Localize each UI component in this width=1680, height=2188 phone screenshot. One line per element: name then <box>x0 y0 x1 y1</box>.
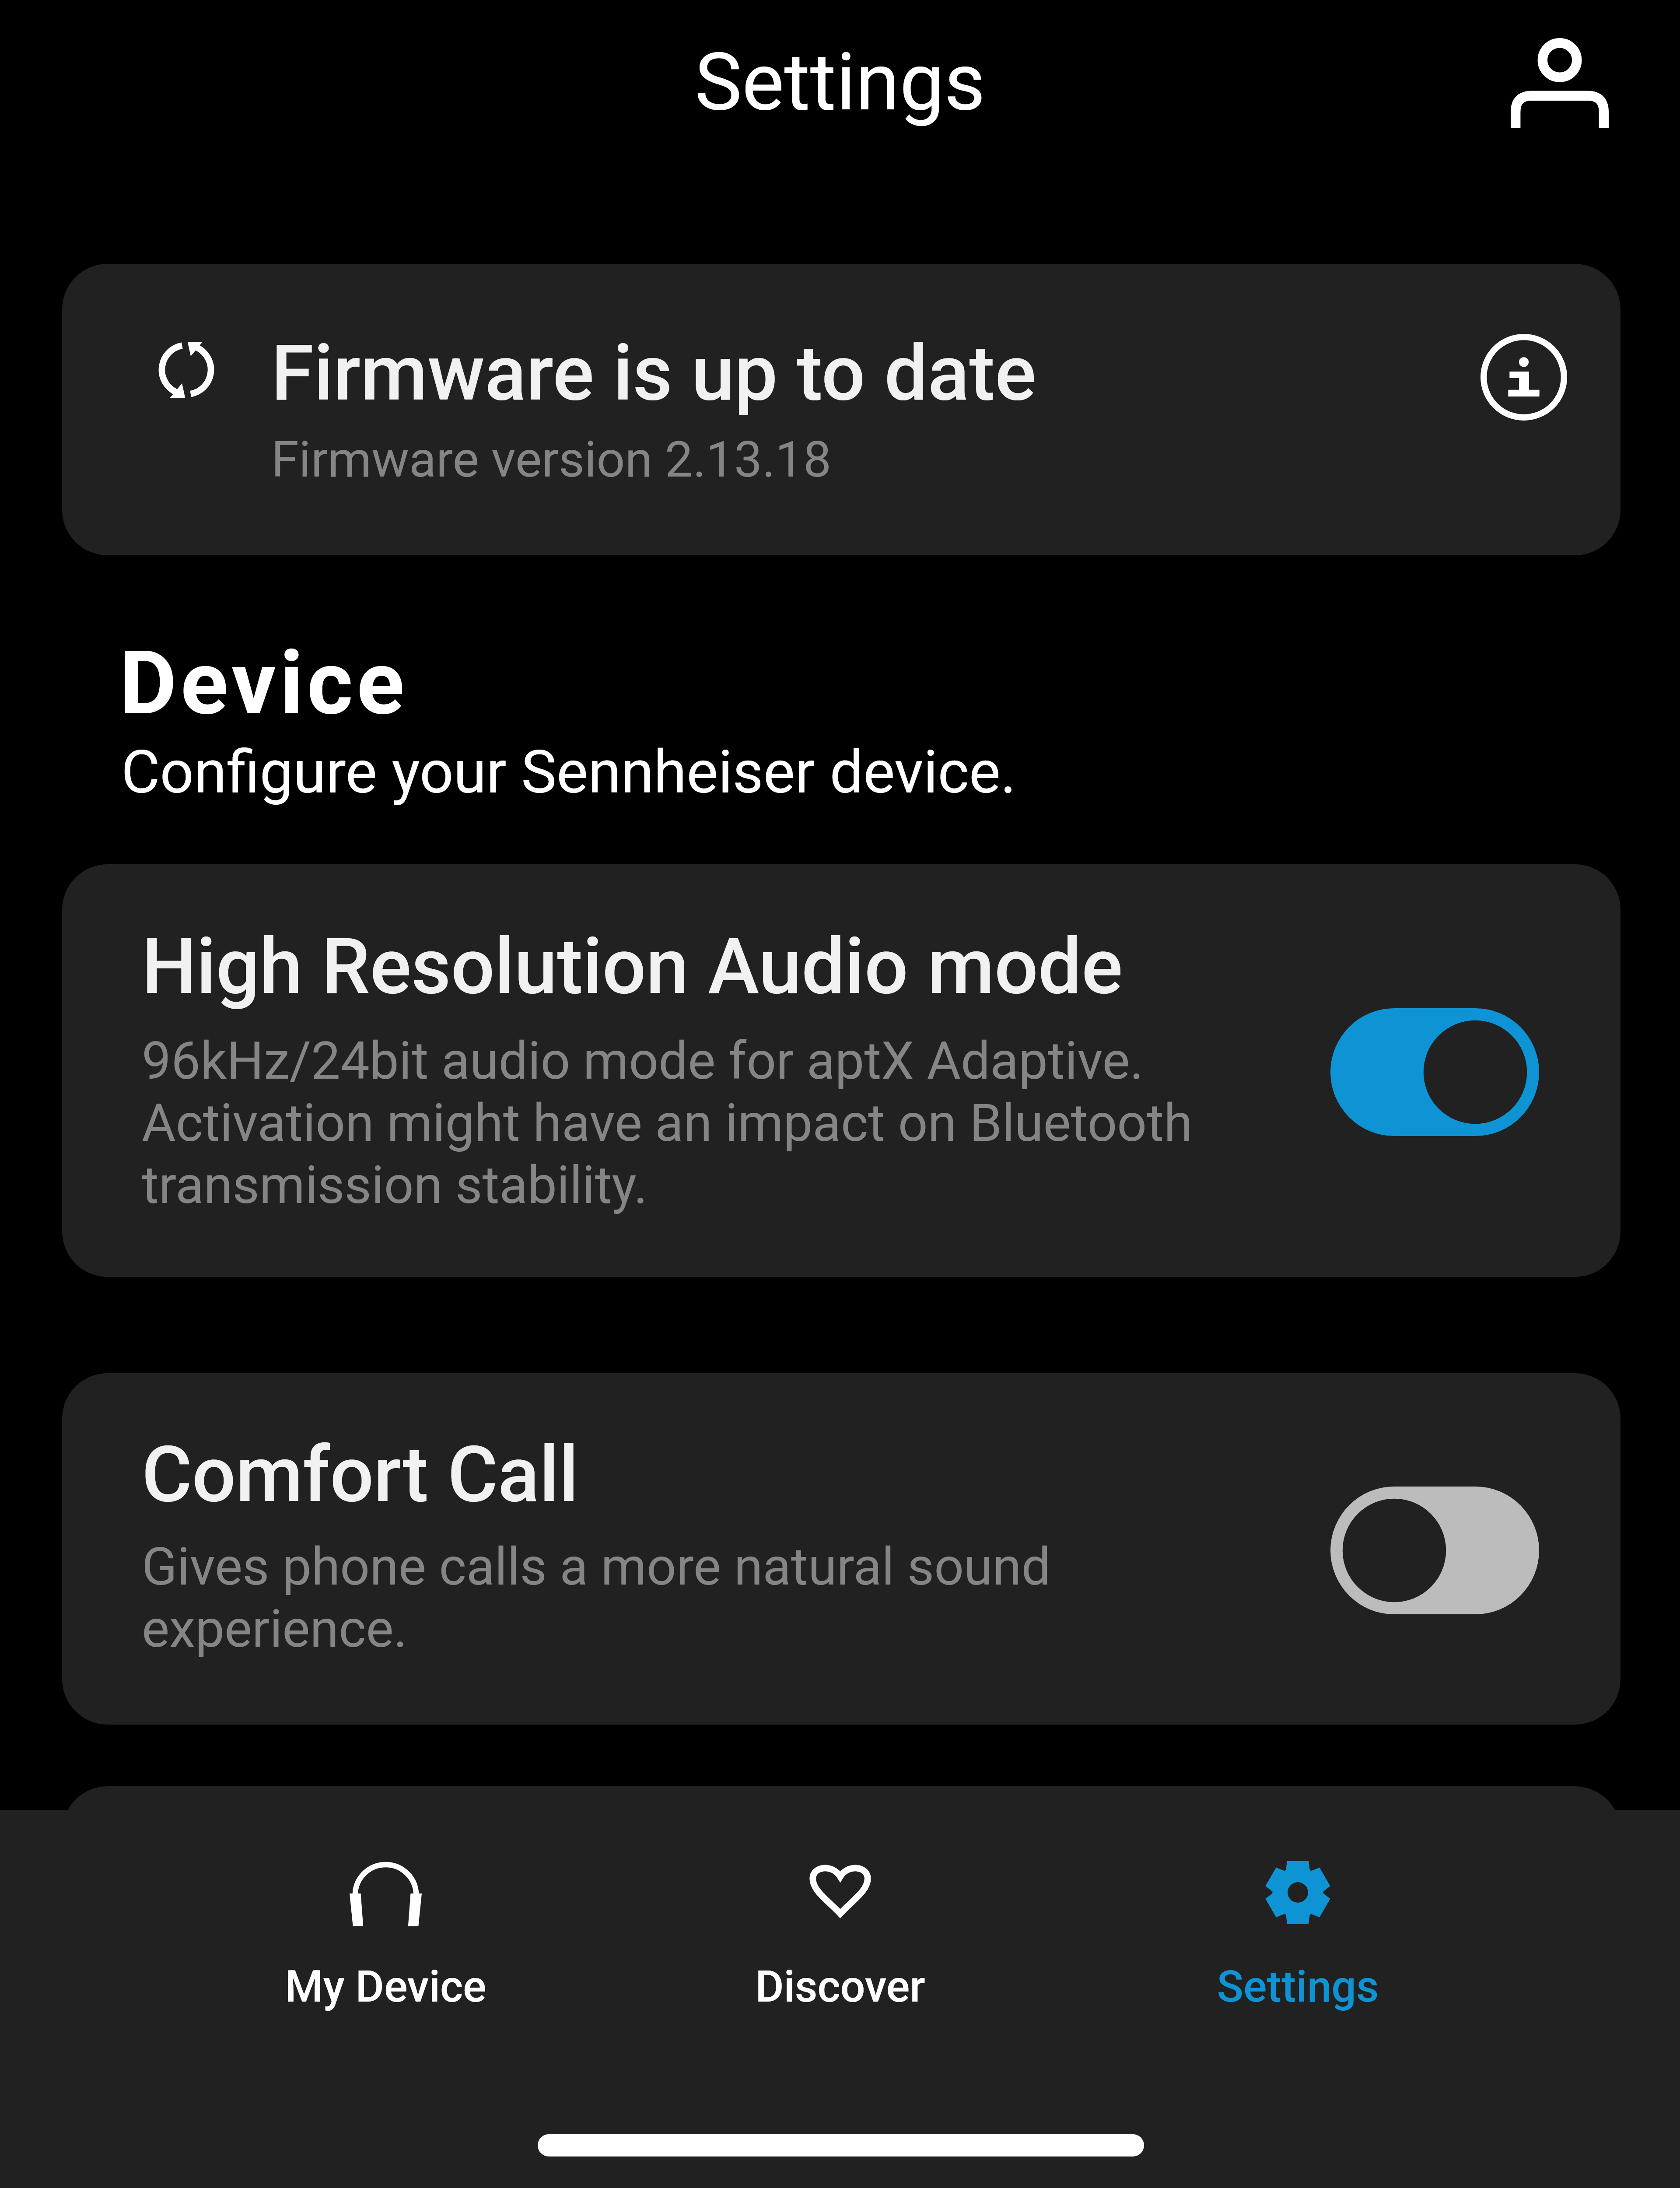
staticText: Gives phone calls a more natural sound e… <box>142 1536 1051 1659</box>
button[interactable]: Comfort Call <box>62 1373 1620 1725</box>
staticText: High Resolution Audio mode <box>142 922 1123 1012</box>
button[interactable]: On-head Detection <box>1330 1898 1539 2026</box>
button[interactable] <box>62 2101 1620 2188</box>
button[interactable]: Firmware is up to date <box>62 264 1620 555</box>
staticText: On-head Detection <box>271 1844 912 1934</box>
button[interactable]: High Resolution Audio mode <box>1330 1008 1539 1136</box>
staticText: Settings <box>1071 1961 1525 2012</box>
staticText: Device <box>119 632 409 735</box>
button[interactable]: High Resolution Audio mode <box>62 864 1620 1277</box>
staticText: Configure your Sennheiser device. <box>121 737 1016 807</box>
staticText: Firmware is up to date <box>271 328 1036 418</box>
staticText: 96kHz/24bit audio mode for aptX Adaptive… <box>142 1031 1193 1216</box>
staticText: Discover <box>613 1961 1067 2012</box>
button[interactable] <box>62 1786 1620 2101</box>
button[interactable]: Account <box>1487 22 1632 144</box>
button[interactable]: Comfort Call <box>1330 1487 1539 1614</box>
staticText: Settings <box>0 35 1680 129</box>
staticText: Activate Smart Pause, hold calls automat… <box>271 1952 1057 2075</box>
staticText: My Device <box>158 1961 613 2012</box>
staticText: Firmware version 2.13.18 <box>271 430 832 489</box>
button[interactable]: Discover <box>613 1810 1067 2055</box>
button[interactable]: My Device <box>158 1810 613 2055</box>
button[interactable]: Firmware info <box>1463 316 1585 438</box>
staticText: Smart Pause <box>271 2153 714 2188</box>
button[interactable]: Settings <box>1071 1810 1525 2055</box>
staticText: Comfort Call <box>142 1430 579 1520</box>
